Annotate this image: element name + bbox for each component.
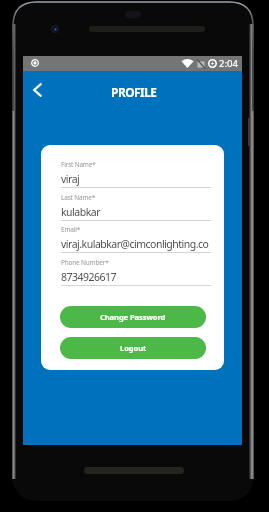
- staticText: First Name*: [61, 160, 96, 169]
- staticText: 2:04: [219, 57, 238, 70]
- button[interactable]: Change Password: [60, 306, 206, 328]
- staticText: Logout: [120, 343, 147, 353]
- staticText: viraj.kulabkar@cimconlighting.co: [61, 237, 213, 251]
- button[interactable]: Logout: [60, 337, 206, 359]
- button[interactable]: Back: [24, 77, 50, 103]
- staticText: Email*: [61, 225, 81, 234]
- staticText: PROFILE: [111, 84, 157, 100]
- staticText: Phone Number*: [61, 258, 109, 267]
- staticText: Change Password: [100, 312, 166, 322]
- staticText: 8734926617: [61, 270, 213, 284]
- staticText: Last Name*: [61, 193, 96, 202]
- staticText: viraj: [61, 172, 213, 186]
- staticText: kulabkar: [61, 205, 213, 219]
